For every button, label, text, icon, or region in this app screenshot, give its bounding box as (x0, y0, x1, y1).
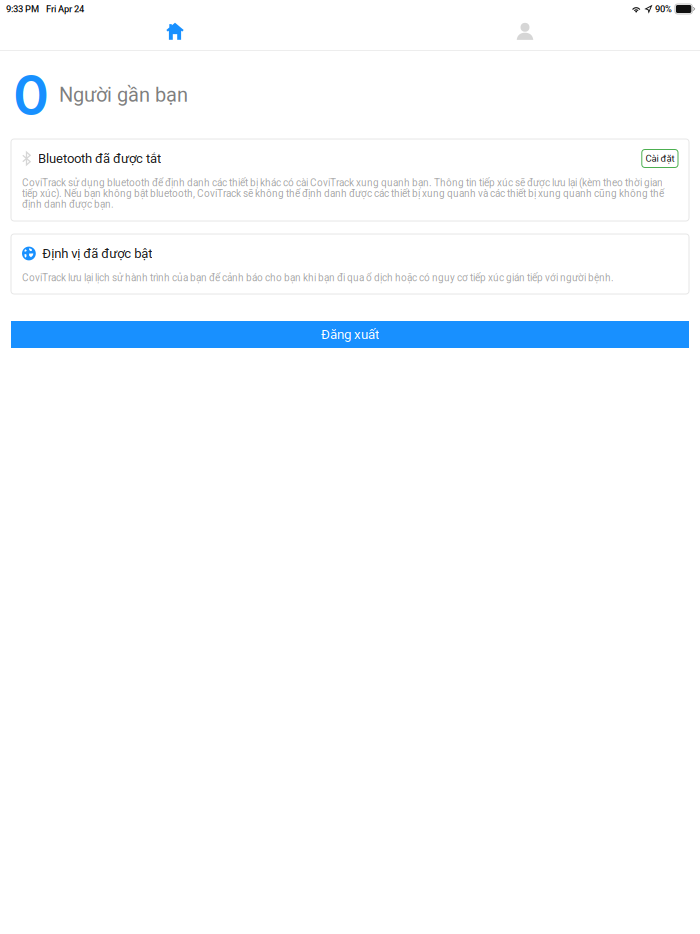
button[interactable]: Cài đặt (642, 149, 678, 167)
button[interactable]: Đăng xuất (11, 321, 689, 348)
staticText: Fri Apr 24 (46, 3, 84, 14)
staticText: Đăng xuất (321, 327, 379, 342)
staticText: CoviTrack sử dụng bluetooth để định danh… (22, 177, 664, 210)
staticText: 90% (655, 3, 672, 14)
button[interactable]: Profile (350, 18, 700, 50)
staticText: 0 (13, 62, 49, 128)
staticText: Người gần bạn (59, 83, 188, 107)
staticText: Bluetooth đã được tắt (38, 151, 161, 166)
staticText: Cài đặt (645, 153, 674, 164)
staticText: Định vị đã được bật (42, 246, 152, 261)
staticText: 9:33 PM (6, 3, 39, 14)
staticText: CoviTrack lưu lại lịch sử hành trình của… (22, 272, 614, 284)
button[interactable]: Home (0, 18, 350, 50)
